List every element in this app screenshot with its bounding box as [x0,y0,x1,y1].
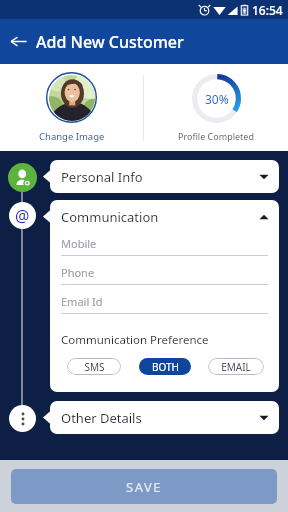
staticText: Email Id [61,294,103,309]
staticText: @ [15,205,30,227]
button[interactable]: SMS [67,358,121,375]
staticText: Profile Completed [178,130,254,142]
button[interactable]: Change Image [0,72,143,143]
staticText: SMS [84,360,105,374]
staticText: Change Image [39,130,105,143]
button[interactable]: SAVE [11,469,277,504]
staticText: Communication [61,208,159,226]
staticText: Personal Info [61,168,143,186]
staticText: Mobile [61,236,97,251]
staticText: 30% [205,91,229,107]
button[interactable]: Personal Info [50,160,279,193]
staticText: Add New Customer [36,31,184,53]
staticText: 16:54 [252,2,283,18]
staticText: Other Details [61,409,142,427]
button[interactable]: EMAIL [208,358,264,375]
staticText: EMAIL [221,360,251,374]
button[interactable]: Communication [50,200,279,233]
staticText: Communication Preference [61,332,209,348]
staticText: BOTH [152,360,179,374]
button[interactable]: Back [0,19,36,64]
button[interactable]: Other Details [50,401,279,434]
button[interactable]: BOTH [139,358,191,375]
staticText: Phone [61,265,95,280]
staticText: SAVE [126,478,162,496]
